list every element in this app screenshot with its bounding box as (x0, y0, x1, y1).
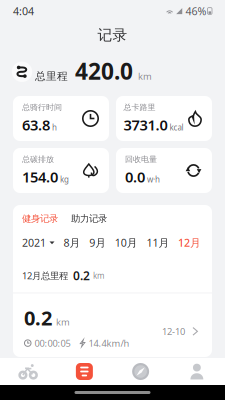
staticText: 2021 (22, 235, 46, 250)
staticText: 46% (186, 4, 207, 18)
staticText: km (56, 316, 70, 328)
staticText: 9月 (89, 235, 106, 250)
staticText: 00:00:05 (34, 337, 70, 349)
button[interactable]: 0.2 (13, 293, 212, 349)
staticText: 420.0 (75, 56, 133, 86)
button[interactable]: Discover (112, 358, 169, 385)
staticText: 8月 (64, 235, 81, 250)
staticText: 12月 (178, 235, 201, 250)
staticText: 4:04 (13, 4, 34, 18)
staticText: h (52, 122, 57, 133)
staticText: 11月 (146, 235, 169, 250)
staticText: 0.2 (73, 268, 90, 283)
staticText: 健身记录 (22, 213, 58, 224)
staticText: kcal (169, 122, 183, 133)
staticText: 12月总里程 (22, 269, 68, 282)
staticText: 12-10 (162, 325, 185, 337)
staticText: 总卡路里 (123, 102, 155, 112)
staticText: 总里程 (35, 70, 68, 83)
staticText: 14.4km/h (88, 337, 129, 349)
staticText: 63.8 (22, 115, 50, 135)
staticText: w·h (147, 174, 160, 185)
staticText: km (93, 270, 104, 281)
staticText: 154.0 (22, 167, 58, 187)
staticText: 总骑行时间 (22, 102, 62, 112)
staticText: 助力记录 (71, 213, 107, 224)
staticText: 回收电量 (125, 154, 157, 164)
button[interactable]: Ride (0, 358, 56, 385)
staticText: 0.0 (125, 167, 145, 187)
staticText: 记录 (97, 26, 127, 44)
staticText: km (138, 70, 152, 82)
button[interactable]: 助力记录 (58, 213, 107, 224)
staticText: 总碳排放 (22, 154, 54, 164)
button[interactable]: Profile (169, 358, 225, 385)
staticText: kg (60, 174, 69, 185)
staticText: 0.2 (24, 304, 52, 331)
button[interactable]: Records (56, 358, 112, 385)
button[interactable]: 健身记录 (22, 213, 58, 224)
staticText: 10月 (115, 235, 138, 250)
staticText: 3731.0 (123, 115, 167, 135)
button[interactable]: 2021 (22, 235, 55, 250)
